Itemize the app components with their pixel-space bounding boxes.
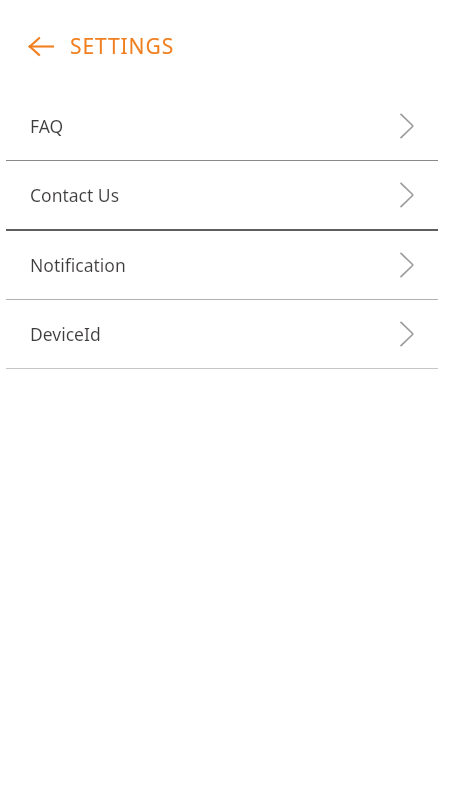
staticText: Notification [30,253,126,277]
button[interactable]: Notification [0,231,450,299]
button[interactable]: FAQ [0,92,450,160]
button[interactable]: Back [29,29,59,63]
staticText: Contact Us [30,183,120,207]
staticText: SETTINGS [70,32,175,61]
staticText: FAQ [30,114,64,138]
button[interactable]: DeviceId [0,300,450,368]
button[interactable]: Contact Us [0,161,450,229]
staticText: DeviceId [30,322,101,346]
